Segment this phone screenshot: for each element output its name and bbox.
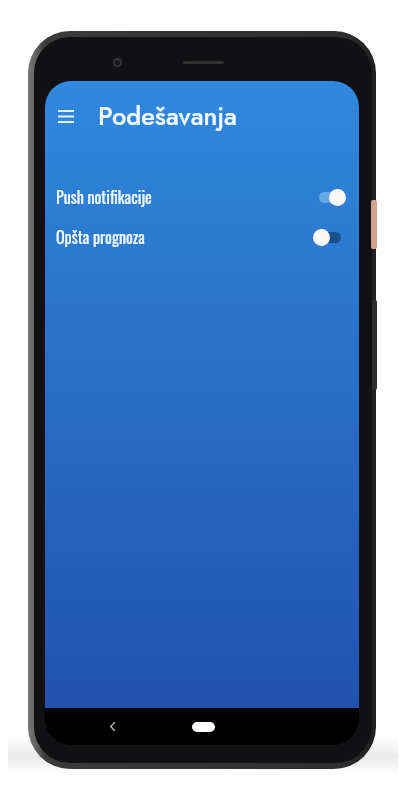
- staticText: Push notifikacije: [56, 185, 152, 209]
- staticText: Opšta prognoza: [56, 225, 145, 249]
- staticText: Podešavanja: [98, 98, 237, 135]
- button[interactable]: Push notifikacije: [45, 180, 359, 214]
- button[interactable]: Home: [192, 722, 215, 732]
- button[interactable]: Back: [99, 713, 125, 739]
- button[interactable]: Open navigation menu: [48, 98, 84, 134]
- button[interactable]: Opšta prognoza: [45, 220, 359, 254]
